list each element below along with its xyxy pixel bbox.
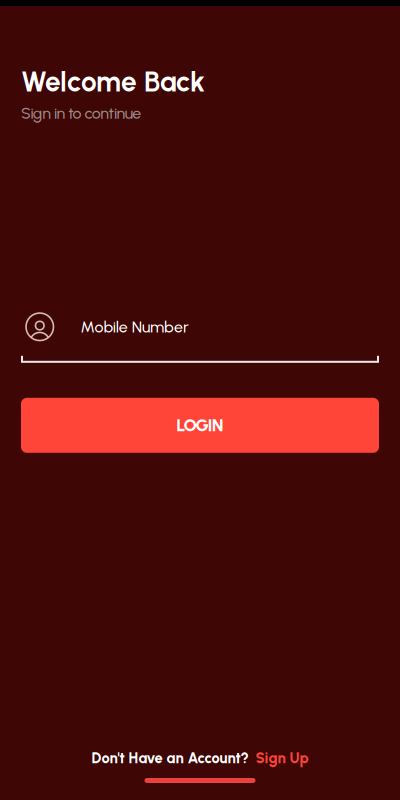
staticText: Sign in to continue — [21, 104, 141, 123]
staticText: Mobile Number — [80, 317, 189, 336]
staticText: LOGIN — [176, 415, 224, 436]
staticText: Welcome Back — [21, 65, 205, 99]
button[interactable]: LOGIN — [21, 398, 379, 453]
staticText: Don't Have an Account? — [91, 749, 248, 767]
button[interactable]: Sign Up — [248, 749, 308, 767]
staticText: Sign Up — [255, 749, 308, 767]
